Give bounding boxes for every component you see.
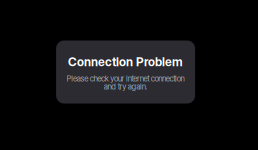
staticText: Please check your internet connection	[67, 74, 185, 83]
staticText: Connection Problem	[68, 55, 183, 69]
button[interactable]: Connection Problem	[56, 40, 195, 103]
staticText: and try again.	[104, 82, 147, 91]
